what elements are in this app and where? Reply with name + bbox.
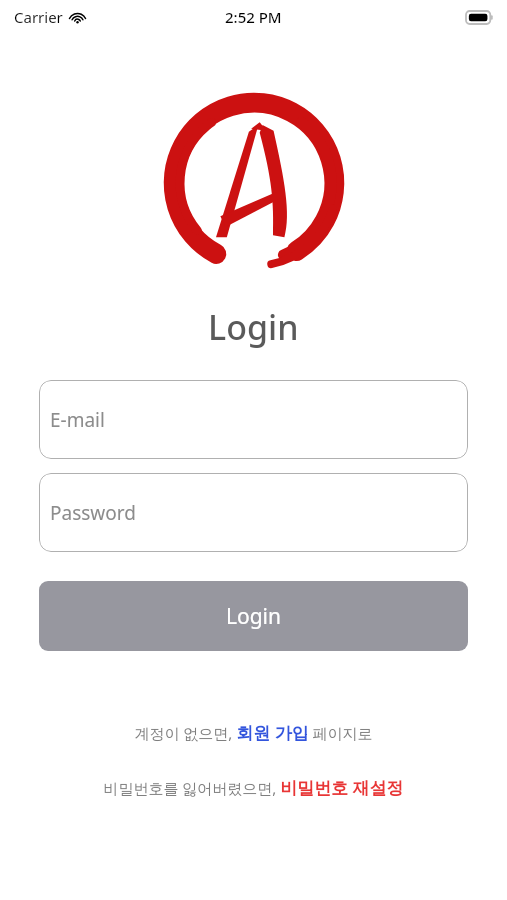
staticText: Carrier xyxy=(14,7,63,27)
staticText: Login xyxy=(226,602,282,631)
staticText: 계정이 없으면, 회원 가입 페이지로 xyxy=(134,721,373,744)
staticText: Password xyxy=(50,500,136,526)
button[interactable]: E-mail xyxy=(39,380,468,459)
other: Logo xyxy=(159,88,349,278)
button[interactable]: 계정이 없으면, 회원 가입 페이지로 xyxy=(0,721,507,744)
button[interactable]: Login xyxy=(39,581,468,651)
staticText: E-mail xyxy=(50,407,105,433)
button[interactable]: 비밀번호를 잃어버렸으면, 비밀번호 재설정 xyxy=(0,776,507,799)
button[interactable]: Password xyxy=(39,473,468,552)
staticText: Login xyxy=(208,304,299,350)
staticText: 2:52 PM xyxy=(225,7,282,27)
staticText: 비밀번호를 잃어버렸으면, 비밀번호 재설정 xyxy=(103,776,404,799)
